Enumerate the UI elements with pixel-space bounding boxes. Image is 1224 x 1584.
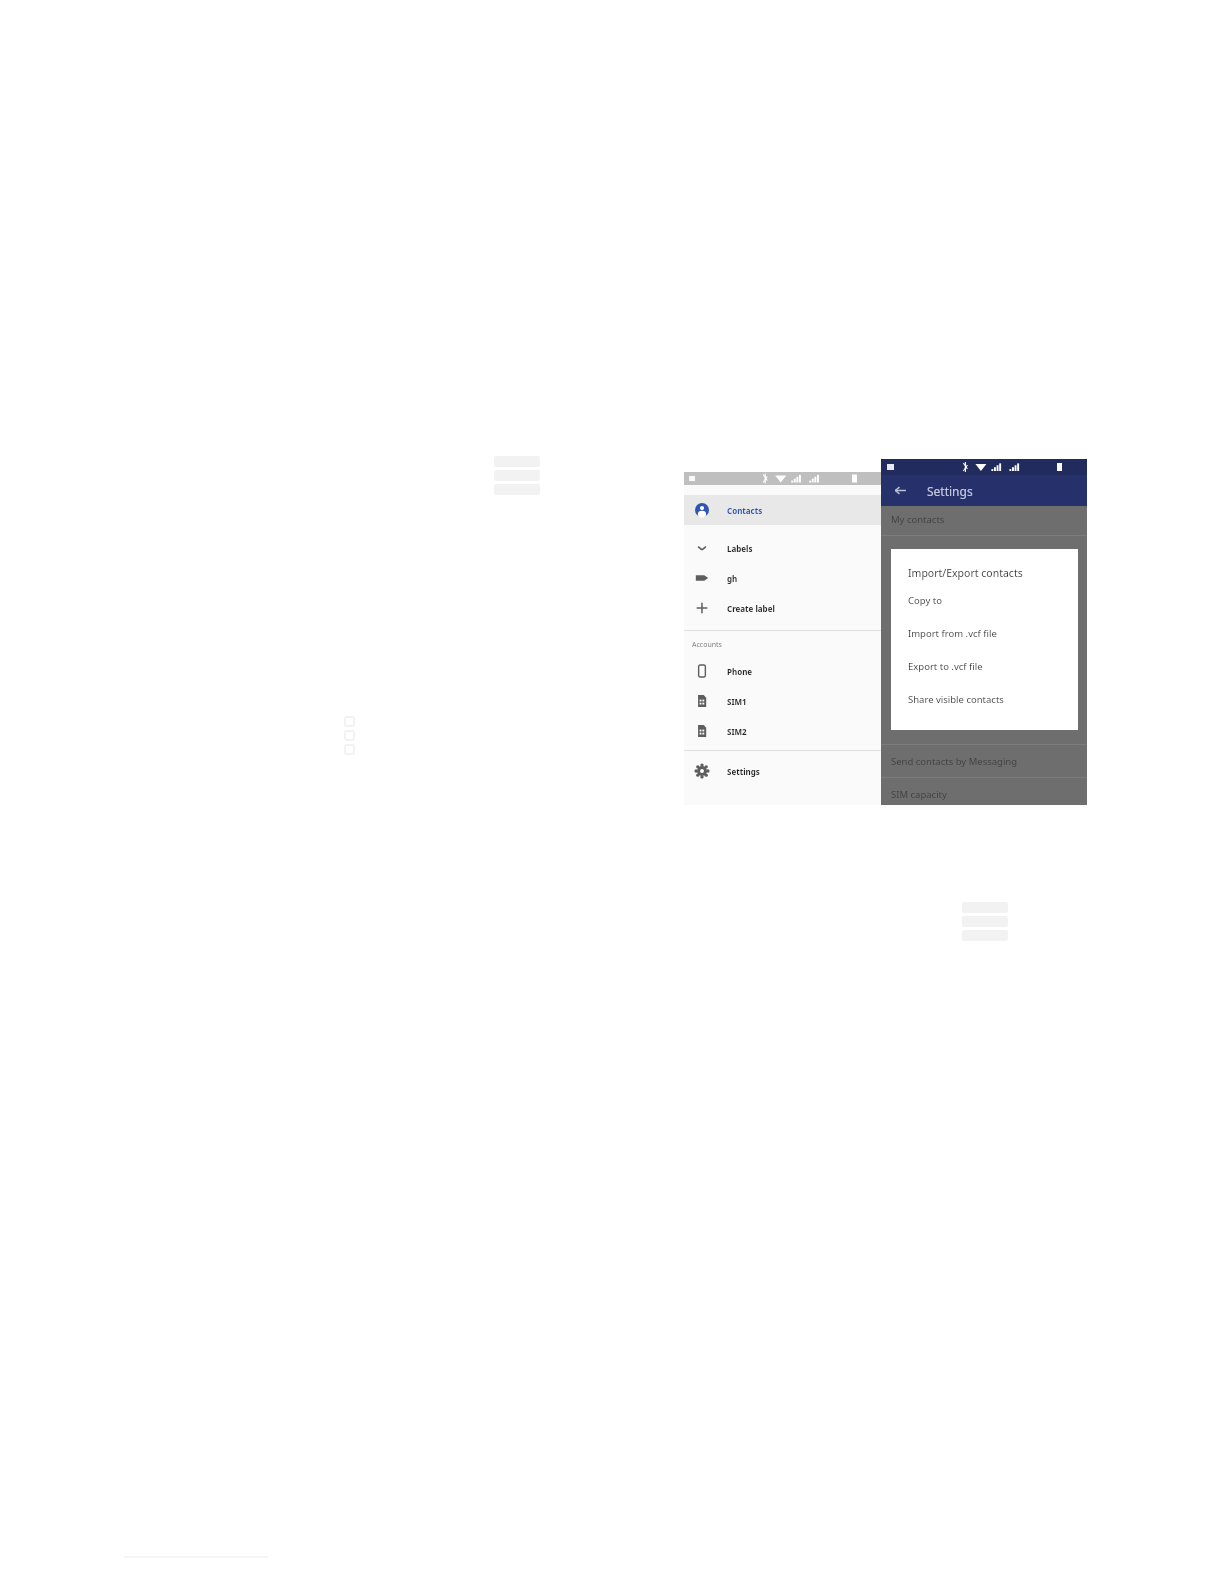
staticText: Import from .vcf file xyxy=(908,627,997,640)
button[interactable]: Import/Export contacts xyxy=(891,562,1078,583)
staticText: Settings xyxy=(927,483,973,499)
staticText: SIM2 xyxy=(727,726,747,737)
staticText: Create label xyxy=(727,603,775,614)
button[interactable]: SIM1 xyxy=(684,686,882,716)
button[interactable]: SIM capacity xyxy=(881,787,1087,801)
staticText: Send contacts by Messaging xyxy=(891,755,1018,768)
button[interactable]: Copy to xyxy=(891,590,1078,611)
staticText: SIM capacity xyxy=(891,788,947,801)
button[interactable]: Sort by xyxy=(881,547,1087,561)
button[interactable]: Back xyxy=(892,482,909,499)
staticText: Labels xyxy=(727,543,753,554)
button[interactable]: Share visible contacts xyxy=(891,689,1078,710)
button[interactable]: Create label xyxy=(684,593,882,623)
staticText: Sort by xyxy=(891,548,923,561)
staticText: My contacts xyxy=(891,513,945,526)
button[interactable]: Send contacts by Messaging xyxy=(881,754,1087,768)
staticText: Share visible contacts xyxy=(908,693,1004,706)
button[interactable]: SIM2 xyxy=(684,716,882,746)
button[interactable]: Settings xyxy=(684,756,882,786)
button[interactable]: Contacts xyxy=(684,495,882,525)
button[interactable]: gh xyxy=(684,563,882,593)
staticText: Export to .vcf file xyxy=(908,660,983,673)
button[interactable]: My contacts xyxy=(881,512,1087,526)
button[interactable]: Labels xyxy=(684,533,882,563)
button[interactable]: Export to .vcf file xyxy=(891,656,1078,677)
staticText: Import/Export contacts xyxy=(908,566,1023,580)
staticText: Contacts xyxy=(727,505,763,516)
staticText: Settings xyxy=(727,766,760,777)
staticText: Accounts xyxy=(692,640,722,650)
staticText: gh xyxy=(727,573,738,584)
staticText: SIM1 xyxy=(727,696,747,707)
button[interactable]: Import from .vcf file xyxy=(891,623,1078,644)
staticText: Phone xyxy=(727,666,753,677)
staticText: Copy to xyxy=(908,594,942,607)
button[interactable]: Phone xyxy=(684,656,882,686)
